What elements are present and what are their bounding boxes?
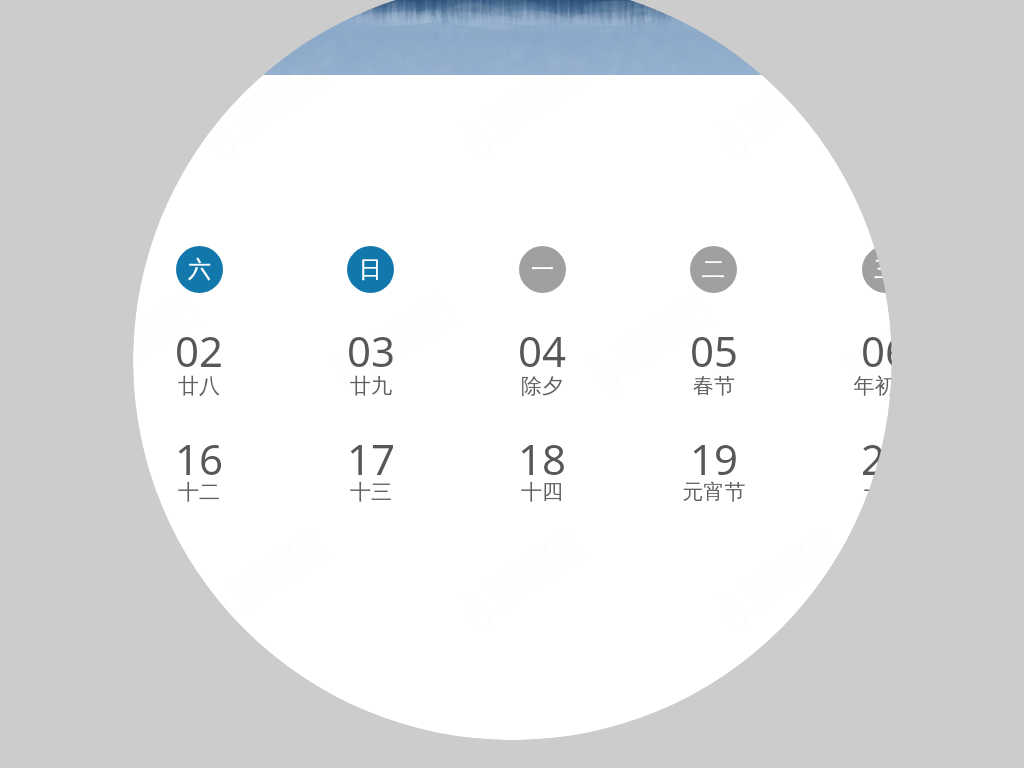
staticText: 年初二 [815, 373, 955, 399]
staticText: 日 [359, 255, 382, 284]
staticText: 一 [531, 255, 554, 284]
button[interactable]: 19 [644, 430, 784, 511]
button[interactable]: 05 [644, 322, 784, 405]
button[interactable]: 星期二 [690, 246, 737, 293]
staticText: 16 [129, 430, 269, 487]
staticText: 春节 [644, 373, 784, 399]
button[interactable]: 02 [129, 322, 269, 405]
staticText: 十三 [301, 479, 441, 505]
staticText: 06 [815, 322, 955, 379]
staticText: 元宵节 [644, 479, 784, 505]
staticText: 廿九 [301, 373, 441, 399]
staticText: 除夕 [472, 373, 612, 399]
staticText: 04 [472, 322, 612, 379]
staticText: 三 [874, 255, 897, 284]
staticText: 02 [129, 322, 269, 379]
button[interactable]: 星期六 [176, 246, 223, 293]
staticText: 廿八 [129, 373, 269, 399]
staticText: 19 [644, 430, 784, 487]
button[interactable]: 03 [301, 322, 441, 405]
button[interactable]: 06 [815, 322, 955, 405]
staticText: 17 [301, 430, 441, 487]
staticText: 十四 [472, 479, 612, 505]
button[interactable]: 16 [129, 430, 269, 511]
button[interactable]: 04 [472, 322, 612, 405]
staticText: 03 [301, 322, 441, 379]
button[interactable]: 星期一 [519, 246, 566, 293]
button[interactable]: 星期三 [862, 246, 909, 293]
button[interactable]: 星期日 [347, 246, 394, 293]
button[interactable]: 20 [815, 430, 955, 511]
staticText: 18 [472, 430, 612, 487]
staticText: 05 [644, 322, 784, 379]
staticText: 二 [702, 255, 725, 284]
staticText: 六 [188, 255, 211, 284]
staticText: 20 [815, 430, 955, 487]
staticText: 十二 [129, 479, 269, 505]
button[interactable]: 17 [301, 430, 441, 511]
staticText: 十六 [815, 479, 955, 505]
button[interactable]: 18 [472, 430, 612, 511]
